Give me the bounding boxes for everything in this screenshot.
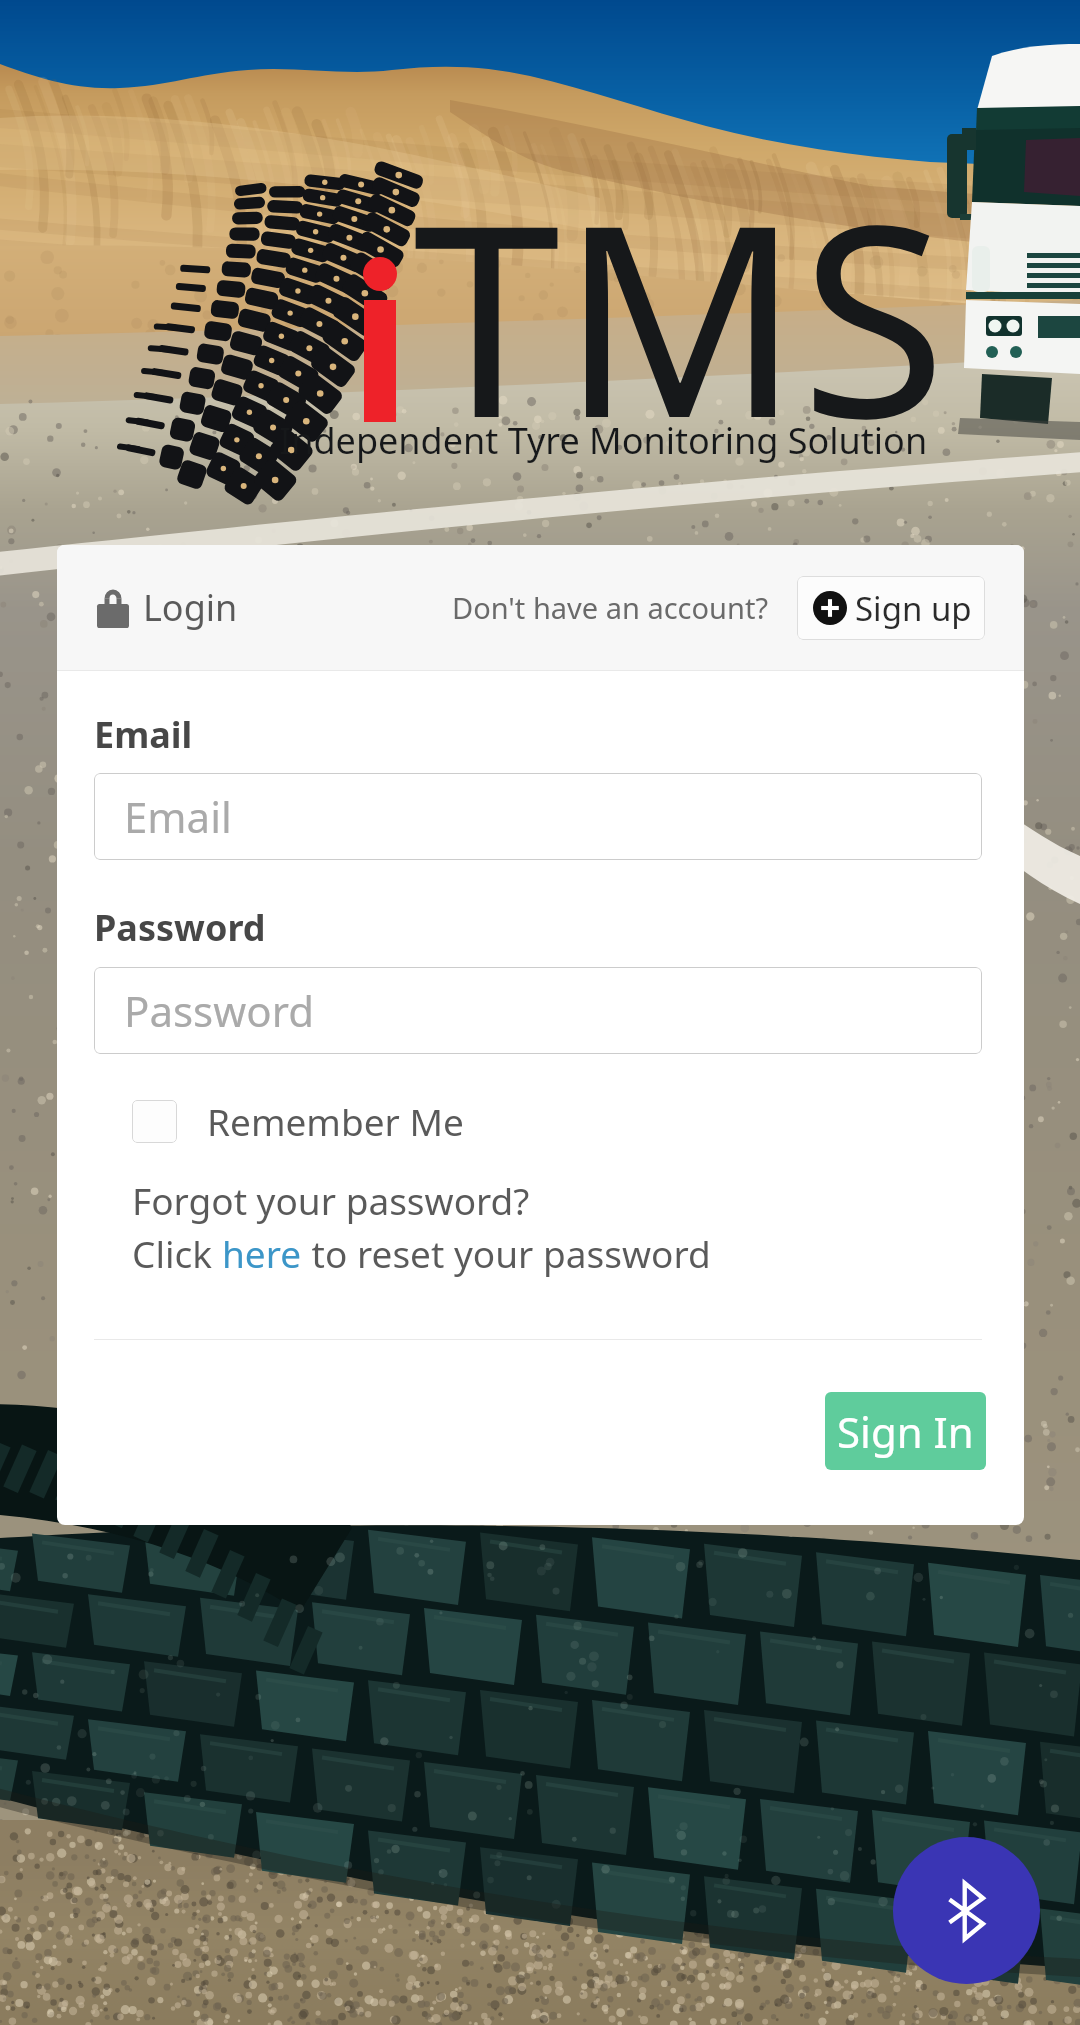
staticText: Independent Tyre Monitoring Solution	[279, 416, 928, 465]
staticText: Password	[94, 903, 266, 952]
button[interactable]: Bluetooth	[893, 1837, 1040, 1984]
staticText: Sign In	[837, 1403, 974, 1460]
staticText: Remember Me	[207, 1096, 464, 1146]
staticText: Don't have an account?	[452, 588, 768, 627]
staticText: Sign up	[855, 586, 972, 631]
staticText: Email	[94, 710, 193, 759]
staticText: TMS	[413, 134, 947, 495]
button[interactable]: Password	[94, 967, 982, 1054]
staticText: Forgot your password?	[132, 1175, 530, 1225]
staticText: Password	[124, 982, 314, 1039]
button[interactable]: Sign up	[797, 576, 985, 640]
button[interactable]: Email	[94, 773, 982, 860]
staticText: to reset your password	[302, 1228, 711, 1278]
staticText: Click	[132, 1228, 222, 1278]
button[interactable]: Remember Me	[132, 1096, 464, 1146]
button[interactable]: here	[222, 1228, 302, 1278]
staticText: Login	[143, 583, 238, 632]
staticText: Email	[124, 788, 232, 845]
button[interactable]: Sign In	[825, 1392, 986, 1470]
